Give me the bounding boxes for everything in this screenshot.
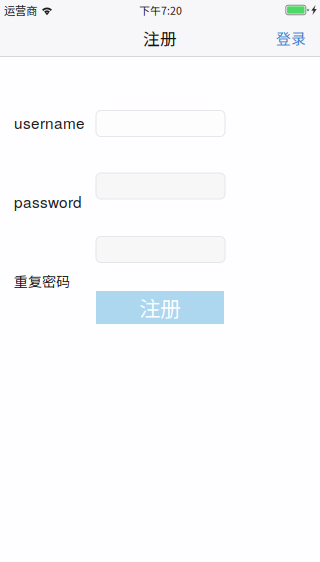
staticText: 重复密码 bbox=[14, 271, 70, 291]
staticText: 注册 bbox=[143, 26, 177, 50]
staticText: username bbox=[14, 111, 85, 133]
button[interactable]: username bbox=[96, 110, 225, 136]
button[interactable]: 重复密码 bbox=[96, 236, 225, 262]
button[interactable]: 注册 bbox=[96, 291, 224, 324]
button[interactable]: 登录 bbox=[263, 21, 319, 55]
staticText: 注册 bbox=[139, 292, 181, 323]
staticText: 登录 bbox=[276, 27, 306, 49]
staticText: 下午7:20 bbox=[139, 2, 182, 18]
staticText: 运营商 bbox=[4, 2, 37, 18]
staticText: password bbox=[14, 190, 82, 212]
